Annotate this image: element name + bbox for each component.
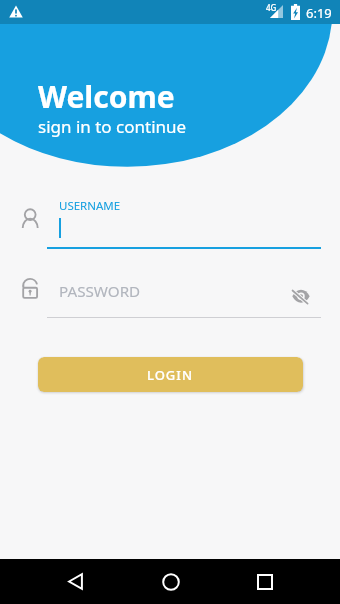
- staticText: PASSWORD: [59, 281, 141, 302]
- button[interactable]: Toggle password visibility: [289, 285, 313, 309]
- staticText: USERNAME: [59, 198, 121, 214]
- button[interactable]: Recent apps: [244, 561, 285, 602]
- button[interactable]: Home: [150, 561, 191, 602]
- staticText: sign in to continue: [38, 115, 187, 138]
- staticText: Welcome: [38, 76, 175, 117]
- staticText: 6:19: [306, 4, 332, 22]
- button[interactable]: Back: [55, 561, 96, 602]
- button[interactable]: LOGIN: [38, 357, 303, 392]
- staticText: 4G: [266, 2, 277, 13]
- staticText: LOGIN: [147, 366, 194, 384]
